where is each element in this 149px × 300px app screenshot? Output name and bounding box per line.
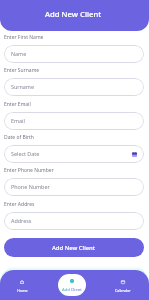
- staticText: Name: [11, 50, 27, 57]
- staticText: Add New Client: [45, 9, 102, 19]
- staticText: Phone Number: [11, 183, 50, 190]
- staticText: Enter Surname: [4, 67, 144, 74]
- staticText: Home: [17, 288, 28, 293]
- staticText: Surname: [11, 83, 34, 90]
- staticText: Enter Email: [4, 101, 144, 108]
- button[interactable]: Phone Number: [4, 178, 144, 196]
- staticText: Date of Birth: [4, 134, 144, 141]
- staticText: Email: [11, 117, 25, 124]
- staticText: Add New Client: [52, 244, 96, 252]
- staticText: Add Client: [62, 287, 82, 293]
- staticText: Select Date: [11, 150, 40, 157]
- button[interactable]: Add Client: [58, 274, 86, 296]
- button[interactable]: Name: [4, 45, 144, 63]
- button[interactable]: Home: [6, 280, 38, 293]
- button[interactable]: Select Date: [4, 145, 144, 163]
- button[interactable]: Email: [4, 112, 144, 130]
- staticText: Calendar: [115, 288, 131, 293]
- button[interactable]: Calendar: [107, 280, 139, 293]
- button[interactable]: Surname: [4, 78, 144, 96]
- button[interactable]: Address: [4, 212, 144, 230]
- staticText: Enter Addres: [4, 201, 144, 208]
- staticText: Address: [11, 217, 32, 224]
- staticText: Enter First Name: [4, 34, 144, 41]
- staticText: Enter Phone Number: [4, 167, 144, 174]
- button[interactable]: Add New Client: [4, 238, 144, 257]
